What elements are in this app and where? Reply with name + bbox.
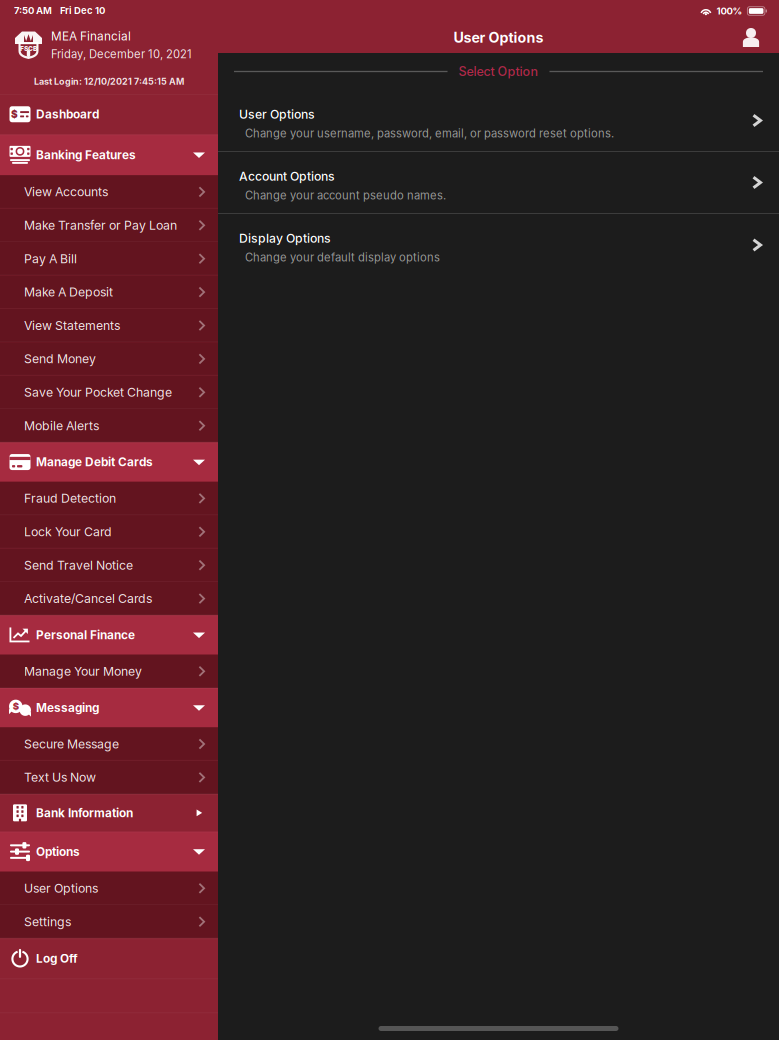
staticText: $ <box>13 701 19 712</box>
staticText: User Options <box>239 107 315 122</box>
staticText: Secure Message <box>24 737 119 751</box>
button[interactable]: View Accounts <box>0 175 218 209</box>
button[interactable]: Banking Features <box>0 134 218 175</box>
button[interactable]: Save Your Pocket Change <box>0 376 218 409</box>
staticText: Send Money <box>24 351 96 366</box>
staticText: Make A Deposit <box>24 285 113 300</box>
staticText: Manage Debit Cards <box>36 455 153 469</box>
button[interactable]: Log Off <box>0 938 218 978</box>
button[interactable]: Text Us Now <box>0 761 218 794</box>
staticText: Banking Features <box>36 148 136 162</box>
staticText: Lock Your Card <box>24 524 112 539</box>
staticText: FSCB <box>20 45 37 53</box>
button[interactable]: Manage Your Money <box>0 655 218 688</box>
button[interactable]: Lock Your Card <box>0 515 218 548</box>
staticText: Bank Information <box>36 806 133 820</box>
button[interactable]: Send Travel Notice <box>0 548 218 582</box>
staticText: Messaging <box>36 700 99 715</box>
button[interactable]: Options <box>0 832 218 872</box>
staticText: Change your default display options <box>245 251 440 264</box>
staticText: View Accounts <box>24 184 108 199</box>
staticText: 7:50 AM <box>14 5 52 16</box>
button[interactable]: Bank Information <box>0 794 218 832</box>
button[interactable]: View Statements <box>0 309 218 342</box>
button[interactable]: Make A Deposit <box>0 275 218 309</box>
staticText: MEA Financial <box>51 29 131 43</box>
staticText: Select Option <box>458 64 538 79</box>
staticText: 100% <box>716 5 742 17</box>
button[interactable]: Fraud Detection <box>0 482 218 515</box>
staticText: Change your account pseudo names. <box>245 189 446 202</box>
staticText: User Options <box>24 881 98 896</box>
staticText: Personal Finance <box>36 628 135 642</box>
staticText: Options <box>36 844 80 859</box>
staticText: User Options <box>453 29 543 46</box>
staticText: Display Options <box>239 231 331 246</box>
staticText: Manage Your Money <box>24 664 142 679</box>
button[interactable]: Activate/Cancel Cards <box>0 582 218 615</box>
staticText: Change your username, password, email, o… <box>245 127 614 140</box>
staticText: Mobile Alerts <box>24 418 99 433</box>
staticText: Fraud Detection <box>24 491 116 506</box>
button[interactable]: Send Money <box>0 342 218 376</box>
staticText: Fri Dec 10 <box>60 5 105 16</box>
button[interactable]: Make Transfer or Pay Loan <box>0 209 218 242</box>
staticText: Log Off <box>36 951 78 966</box>
button[interactable]: User Options <box>0 872 218 905</box>
button[interactable]: Secure Message <box>0 727 218 761</box>
staticText: Pay A Bill <box>24 251 77 266</box>
button[interactable]: Personal Finance <box>0 615 218 655</box>
staticText: Dashboard <box>36 107 99 121</box>
staticText: Account Options <box>239 169 335 184</box>
staticText: $ <box>11 108 18 120</box>
staticText: Save Your Pocket Change <box>24 385 172 400</box>
staticText: Text Us Now <box>24 770 96 785</box>
staticText: Make Transfer or Pay Loan <box>24 218 177 233</box>
button[interactable]: Pay A Bill <box>0 242 218 275</box>
button[interactable]: Manage Debit Cards <box>0 442 218 482</box>
button[interactable]: Display Options <box>218 214 779 276</box>
staticText: Friday, December 10, 2021 <box>51 47 192 61</box>
button[interactable]: Settings <box>0 905 218 938</box>
staticText: Settings <box>24 914 71 929</box>
staticText: Activate/Cancel Cards <box>24 591 152 606</box>
button[interactable]: Account Options <box>218 152 779 214</box>
button[interactable]: Account <box>731 22 771 53</box>
button[interactable]: $ <box>0 94 218 134</box>
button[interactable]: Mobile Alerts <box>0 409 218 442</box>
button[interactable]: User Options <box>218 90 779 152</box>
staticText: Send Travel Notice <box>24 558 133 573</box>
staticText: Last Login: 12/10/2021 7:45:15 AM <box>34 76 184 87</box>
button[interactable]: $ <box>0 688 218 727</box>
staticText: View Statements <box>24 318 120 333</box>
